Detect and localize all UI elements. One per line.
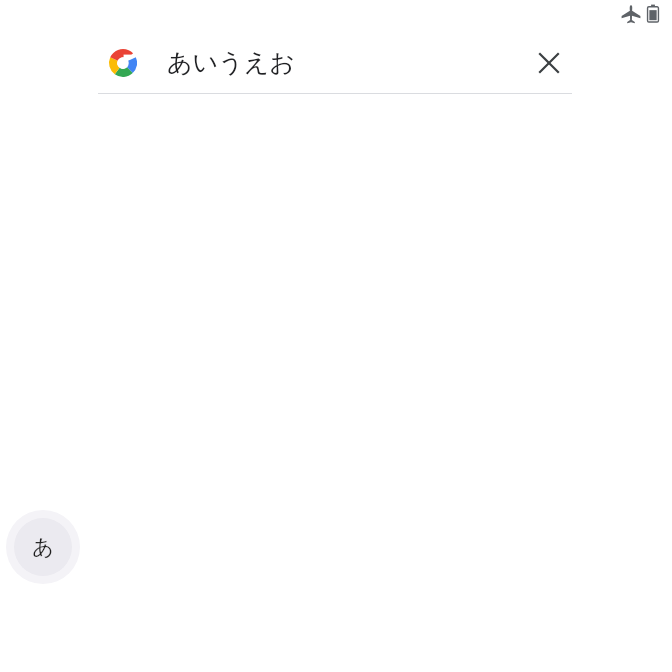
- button[interactable]: Switch input method: [6, 510, 80, 584]
- staticText: あいうえお: [167, 47, 295, 78]
- button[interactable]: Clear search: [531, 45, 567, 81]
- staticText: あ: [32, 534, 54, 560]
